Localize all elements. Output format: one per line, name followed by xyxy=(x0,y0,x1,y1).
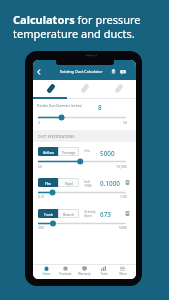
staticText: Airflow xyxy=(43,150,54,154)
staticText: 1.00 xyxy=(120,194,127,199)
staticText: Tonnage xyxy=(62,150,76,154)
staticText: 50 xyxy=(38,164,42,169)
staticText: 0.01 xyxy=(38,194,45,199)
staticText: Rigid xyxy=(65,181,73,185)
staticText: 673 xyxy=(100,210,111,219)
staticText: DUCT SPECIFICATIONS xyxy=(38,134,75,139)
button[interactable]: Products xyxy=(56,265,75,279)
staticText: Flex xyxy=(45,181,52,185)
button[interactable]: Flex xyxy=(38,178,58,187)
button[interactable]: Airflow xyxy=(38,147,58,156)
button[interactable]: Trunk xyxy=(38,209,58,218)
staticText: 10,000 xyxy=(116,164,127,169)
button[interactable]: Lock value xyxy=(124,210,131,217)
staticText: Velocity (fpm) xyxy=(84,210,96,218)
button[interactable]: Duct type 2 xyxy=(68,80,102,99)
staticText: cfm xyxy=(84,149,90,153)
staticText: More xyxy=(119,272,127,276)
button[interactable]: Home xyxy=(36,265,56,279)
staticText: Branch xyxy=(63,212,74,216)
staticText: Products xyxy=(59,272,72,276)
staticText: Trunk xyxy=(44,212,53,216)
staticText: 8 xyxy=(98,103,102,112)
staticText: Existing Duct Calculator xyxy=(60,69,103,74)
button[interactable]: Back xyxy=(33,66,44,77)
button[interactable]: Warranty xyxy=(75,265,94,279)
button[interactable]: Branch xyxy=(58,209,79,218)
staticText: Home xyxy=(42,272,51,276)
button[interactable]: Tonnage xyxy=(58,147,79,156)
staticText: Warranty xyxy=(78,272,91,276)
staticText: 0.1000 xyxy=(100,179,121,188)
button[interactable]: Duct type 3 xyxy=(102,80,136,99)
staticText: 3 xyxy=(38,120,40,125)
staticText: 5000 xyxy=(119,225,127,230)
button[interactable]: Rigid xyxy=(58,178,79,187)
button[interactable]: Report xyxy=(109,67,118,76)
staticText: Tools xyxy=(100,272,108,276)
button[interactable]: Tools xyxy=(94,265,113,279)
staticText: (in)/ 100ft xyxy=(84,180,92,188)
staticText: Flexible Duct Diameter (inches) xyxy=(37,104,82,108)
button[interactable]: More xyxy=(113,265,132,279)
staticText: 5000 xyxy=(100,149,115,158)
staticText: 24 xyxy=(123,120,127,125)
button[interactable]: Duct type 1 xyxy=(33,80,68,99)
staticText: 300 xyxy=(38,225,44,230)
button[interactable]: Lock value xyxy=(124,179,131,186)
button[interactable]: Messages xyxy=(118,67,127,76)
staticText: Calculators for pressure temperature and… xyxy=(13,12,158,42)
